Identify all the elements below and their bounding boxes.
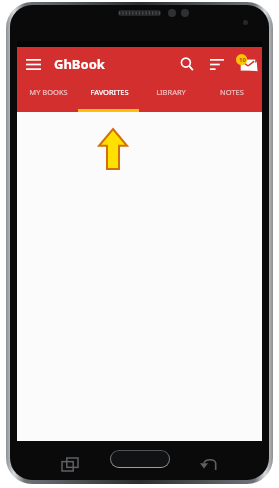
button[interactable]: Open navigation menu	[21, 52, 45, 76]
button[interactable]: Search	[174, 51, 200, 77]
button[interactable]: MY BOOKS	[17, 80, 79, 112]
staticText: NOTES	[220, 87, 244, 97]
button[interactable]: NOTES	[201, 80, 262, 112]
button[interactable]: Home	[111, 451, 169, 467]
staticText: 10	[239, 56, 246, 64]
button[interactable]: Recents	[58, 452, 82, 476]
button[interactable]: LIBRARY	[140, 80, 201, 112]
button[interactable]: Sort	[204, 51, 230, 77]
staticText: LIBRARY	[156, 87, 186, 97]
button[interactable]: Back	[196, 452, 220, 476]
button[interactable]: FAVORITES	[79, 80, 140, 112]
staticText: FAVORITES	[90, 87, 129, 97]
button[interactable]: Messages, 10 unread	[232, 50, 260, 78]
staticText: GhBook	[54, 55, 105, 73]
staticText: MY BOOKS	[29, 87, 68, 97]
